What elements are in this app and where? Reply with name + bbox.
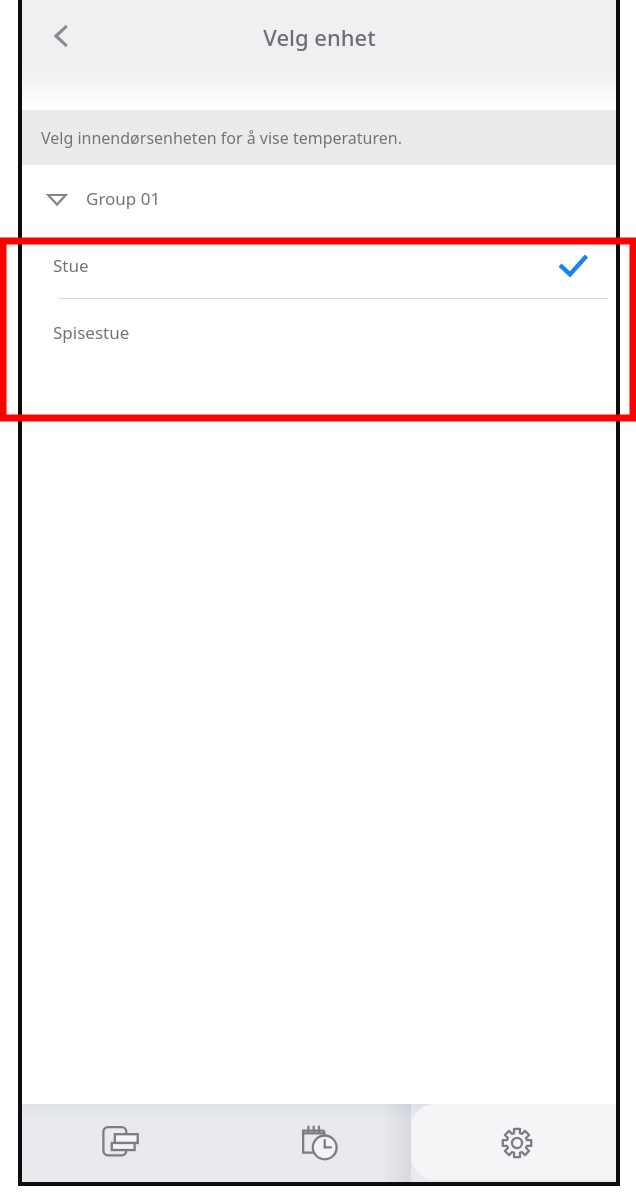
button[interactable]: Back [30, 4, 94, 68]
button[interactable]: Group 01 [22, 165, 616, 232]
button[interactable]: Settings [418, 1104, 616, 1182]
button[interactable]: Stue [22, 232, 616, 299]
staticText: Velg innendørsenheten for å vise tempera… [41, 127, 402, 149]
staticText: Velg enhet [263, 22, 376, 52]
button[interactable]: Schedule [220, 1104, 418, 1182]
staticText: Spisestue [53, 321, 130, 344]
staticText: Stue [53, 254, 89, 277]
button[interactable]: Devices [22, 1104, 220, 1182]
staticText: Group 01 [86, 187, 161, 210]
button[interactable]: Spisestue [22, 299, 616, 366]
